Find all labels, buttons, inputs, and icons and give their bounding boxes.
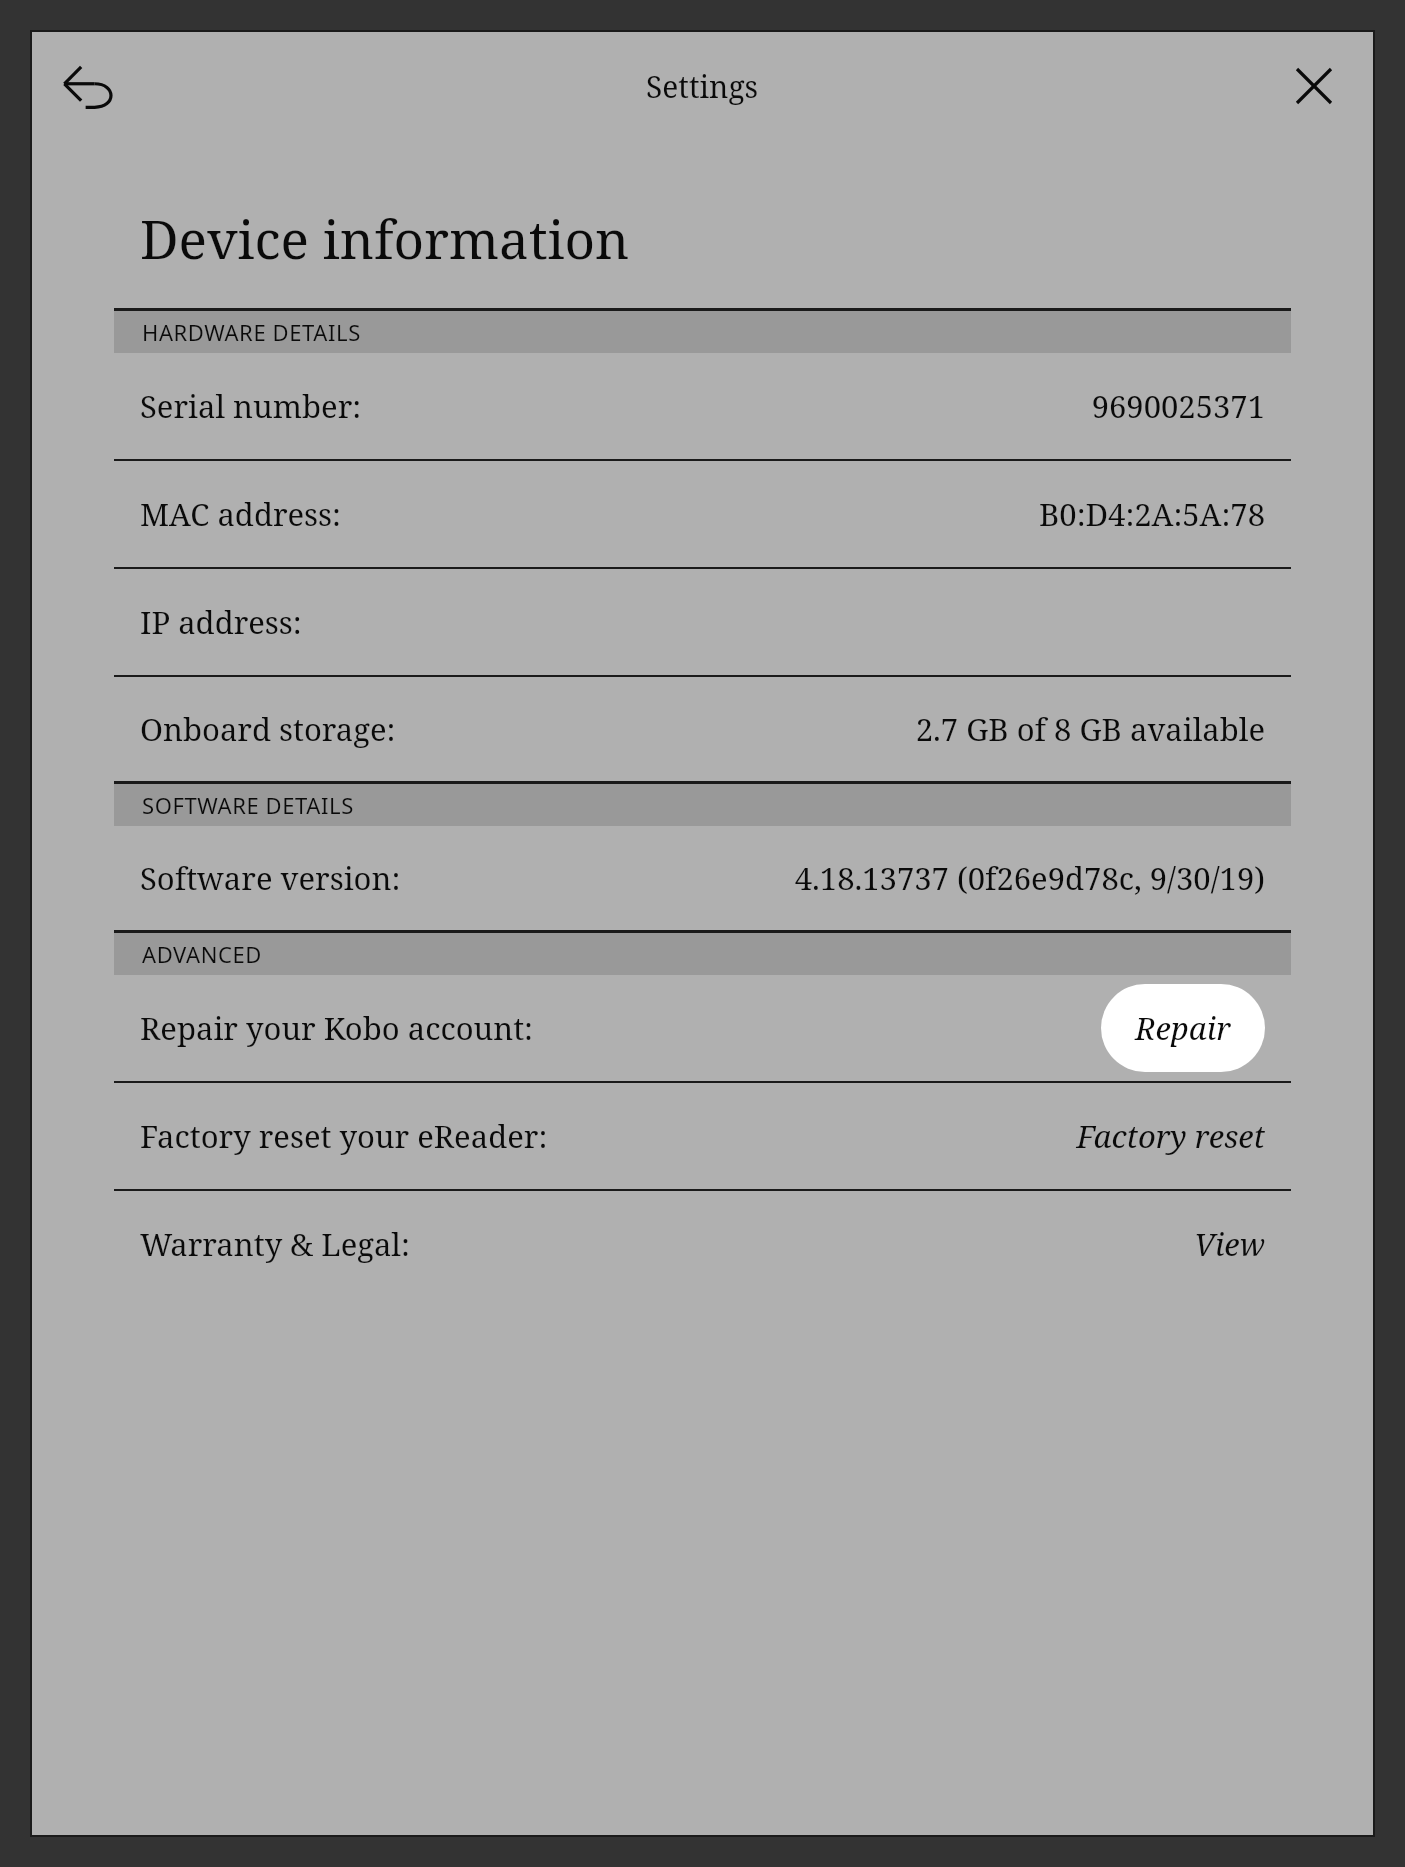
staticText: Onboard storage: <box>140 708 396 750</box>
staticText: View <box>1193 1223 1265 1265</box>
button[interactable]: Repair <box>1101 984 1265 1072</box>
button[interactable]: Factory reset your eReader: <box>114 1083 1291 1189</box>
button[interactable]: Serial number: <box>114 353 1291 459</box>
staticText: 4.18.13737 (0f26e9d78c, 9/30/19) <box>794 857 1265 899</box>
staticText: Repair your Kobo account: <box>140 1007 533 1049</box>
button[interactable]: Onboard storage: <box>114 677 1291 781</box>
staticText: Serial number: <box>140 385 362 427</box>
staticText: B0:D4:2A:5A:78 <box>1039 493 1265 535</box>
staticText: 2.7 GB of 8 GB available <box>915 708 1265 750</box>
staticText: Settings <box>646 66 759 107</box>
staticText: ADVANCED <box>142 939 262 969</box>
button[interactable]: Close <box>1279 51 1349 121</box>
staticText: Software version: <box>140 857 401 899</box>
button[interactable]: Warranty & Legal: <box>114 1191 1291 1297</box>
button[interactable]: Software version: <box>114 826 1291 930</box>
staticText: SOFTWARE DETAILS <box>142 790 354 820</box>
staticText: Warranty & Legal: <box>140 1223 410 1265</box>
staticText: IP address: <box>140 601 302 643</box>
staticText: Device information <box>140 202 630 274</box>
button[interactable]: MAC address: <box>114 461 1291 567</box>
button[interactable]: IP address: <box>114 569 1291 675</box>
button[interactable]: Back <box>50 47 128 125</box>
staticText: MAC address: <box>140 493 341 535</box>
staticText: Factory reset <box>1076 1115 1265 1157</box>
staticText: HARDWARE DETAILS <box>142 317 361 347</box>
staticText: Factory reset your eReader: <box>140 1115 548 1157</box>
staticText: 9690025371 <box>1091 385 1265 427</box>
staticText: Repair <box>1135 1007 1231 1049</box>
